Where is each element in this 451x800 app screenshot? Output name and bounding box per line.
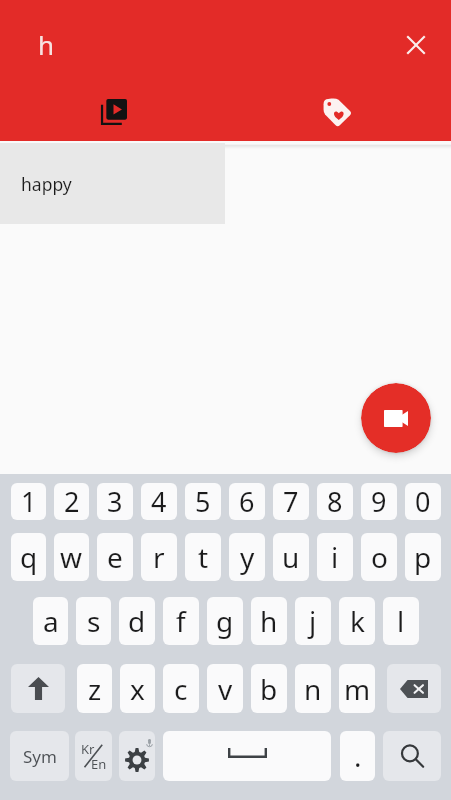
staticText: m (344, 670, 371, 708)
button[interactable]: h (251, 597, 287, 645)
button[interactable]: Record video (361, 383, 431, 453)
staticText: 8 (327, 483, 343, 520)
button[interactable]: 4 (141, 483, 177, 520)
button[interactable]: Sym (10, 731, 69, 781)
button[interactable]: g (207, 597, 243, 645)
button[interactable]: Tags tab (225, 84, 451, 141)
button[interactable]: i (317, 533, 353, 581)
button[interactable]: f (163, 597, 199, 645)
staticText: j (309, 602, 317, 640)
button[interactable]: 7 (273, 483, 309, 520)
staticText: happy (21, 172, 72, 196)
staticText: . (354, 737, 362, 775)
staticText: h (38, 27, 380, 62)
button[interactable]: 8 (317, 483, 353, 520)
button[interactable]: 9 (361, 483, 397, 520)
button[interactable]: a (33, 597, 68, 645)
staticText: k (350, 602, 365, 640)
staticText: a (43, 602, 59, 640)
button[interactable]: j (295, 597, 331, 645)
button[interactable]: o (361, 533, 397, 581)
staticText: c (174, 670, 188, 708)
button[interactable]: y (229, 533, 265, 581)
staticText: u (282, 538, 300, 576)
button[interactable]: Search (383, 731, 441, 781)
staticText: z (88, 670, 102, 708)
button[interactable]: e (97, 533, 133, 581)
staticText: v (218, 670, 233, 708)
staticText: d (128, 602, 146, 640)
button[interactable]: d (119, 597, 155, 645)
staticText: 0 (415, 483, 431, 520)
button[interactable]: 0 (405, 483, 441, 520)
staticText: l (397, 602, 405, 640)
button[interactable]: 1 (11, 483, 46, 520)
staticText: 3 (107, 483, 123, 520)
staticText: e (107, 538, 123, 576)
button[interactable]: Keyboard settings (119, 731, 155, 781)
button[interactable]: 3 (97, 483, 133, 520)
button[interactable]: w (54, 533, 89, 581)
staticText: 6 (239, 483, 255, 520)
button[interactable]: p (405, 533, 441, 581)
button[interactable]: r (141, 533, 177, 581)
staticText: 9 (371, 483, 387, 520)
button[interactable]: Videos tab (0, 84, 225, 141)
button[interactable]: Close search (380, 0, 451, 84)
button[interactable]: s (76, 597, 111, 645)
staticText: 1 (21, 483, 37, 520)
button[interactable]: l (383, 597, 419, 645)
staticText: 5 (195, 483, 211, 520)
staticText: r (153, 538, 165, 576)
button[interactable]: Backspace (387, 664, 441, 713)
staticText: o (371, 538, 388, 576)
staticText: Sym (23, 745, 57, 768)
button[interactable]: Space (163, 731, 331, 781)
button[interactable]: q (11, 533, 46, 581)
staticText: i (331, 538, 339, 576)
button[interactable]: z (77, 664, 112, 713)
button[interactable]: m (339, 664, 375, 713)
staticText: 4 (151, 483, 167, 520)
staticText: g (216, 602, 234, 640)
button[interactable]: Shift (11, 664, 65, 713)
button[interactable]: n (295, 664, 331, 713)
staticText: p (414, 538, 432, 576)
staticText: f (176, 602, 186, 640)
staticText: b (260, 670, 278, 708)
button[interactable]: b (251, 664, 287, 713)
staticText: En (91, 755, 107, 773)
staticText: w (60, 538, 83, 576)
staticText: 7 (283, 483, 299, 520)
staticText: q (20, 538, 38, 576)
button[interactable]: 2 (54, 483, 89, 520)
staticText: n (304, 670, 322, 708)
button[interactable]: k (339, 597, 375, 645)
staticText: s (87, 602, 101, 640)
staticText: t (198, 538, 209, 576)
staticText: y (240, 538, 255, 576)
button[interactable]: u (273, 533, 309, 581)
button[interactable]: 6 (229, 483, 265, 520)
staticText: h (260, 602, 278, 640)
button[interactable]: happy (0, 143, 225, 224)
staticText: 2 (64, 483, 80, 520)
button[interactable]: 5 (185, 483, 221, 520)
staticText: x (130, 670, 145, 708)
button[interactable]: x (120, 664, 155, 713)
button[interactable]: . (340, 731, 375, 781)
button[interactable]: Change language (75, 731, 112, 781)
button[interactable]: v (207, 664, 243, 713)
button[interactable]: c (163, 664, 199, 713)
button[interactable]: t (185, 533, 221, 581)
staticText: Kr (81, 740, 95, 758)
